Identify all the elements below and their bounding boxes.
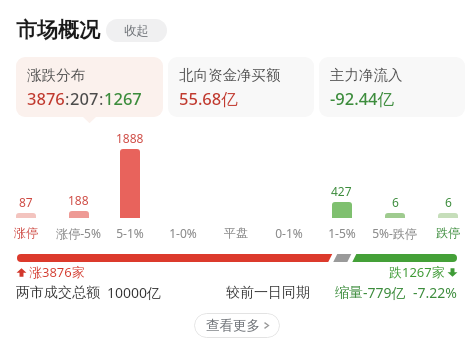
staticText: -92.44亿	[330, 87, 395, 110]
staticText: 涨停-5%	[56, 225, 101, 241]
button[interactable]: 北向资金净买额	[168, 57, 314, 117]
staticText: 涨跌分布	[27, 66, 85, 84]
staticText: :	[99, 87, 104, 109]
staticText: 3876	[27, 87, 65, 109]
staticText: 10000亿	[107, 283, 162, 302]
button[interactable]: 收起	[106, 19, 167, 42]
staticText: 87	[19, 194, 33, 210]
staticText: 6	[445, 194, 452, 210]
staticText: 6	[392, 194, 399, 210]
button[interactable]: 主力净流入	[319, 57, 465, 117]
staticText: :	[65, 87, 70, 109]
staticText: 5%-跌停	[372, 225, 417, 241]
staticText: -779亿	[363, 283, 406, 302]
staticText: 427	[331, 183, 352, 199]
other: Down	[447, 267, 458, 278]
staticText: 0-1%	[275, 225, 303, 241]
staticText: 1-0%	[169, 225, 197, 241]
staticText: 1267	[104, 87, 142, 109]
staticText: 北向资金净买额	[179, 66, 281, 84]
staticText: 查看更多	[206, 317, 260, 334]
staticText: 跌1267家	[389, 263, 445, 281]
button[interactable]: 涨跌分布	[16, 57, 163, 117]
staticText: 207	[70, 87, 99, 109]
staticText: 1-5%	[328, 225, 356, 241]
button[interactable]: 查看更多	[194, 313, 280, 338]
staticText: -7.22%	[413, 283, 457, 302]
staticText: 两市成交总额	[16, 284, 100, 302]
staticText: 5-1%	[116, 225, 144, 241]
staticText: 主力净流入	[330, 66, 403, 84]
staticText: 涨停	[14, 225, 38, 240]
staticText: 市场概况	[16, 17, 100, 43]
staticText: 较前一日同期	[226, 284, 310, 302]
other: Up	[16, 267, 27, 278]
staticText: 收起	[124, 23, 149, 39]
staticText: 188	[68, 192, 89, 208]
staticText: 涨3876家	[29, 263, 85, 281]
staticText: 跌停	[436, 225, 460, 240]
staticText: 平盘	[224, 225, 248, 240]
staticText: 缩量	[335, 284, 363, 302]
staticText: 1888	[116, 130, 144, 146]
staticText: 55.68亿	[179, 87, 238, 110]
